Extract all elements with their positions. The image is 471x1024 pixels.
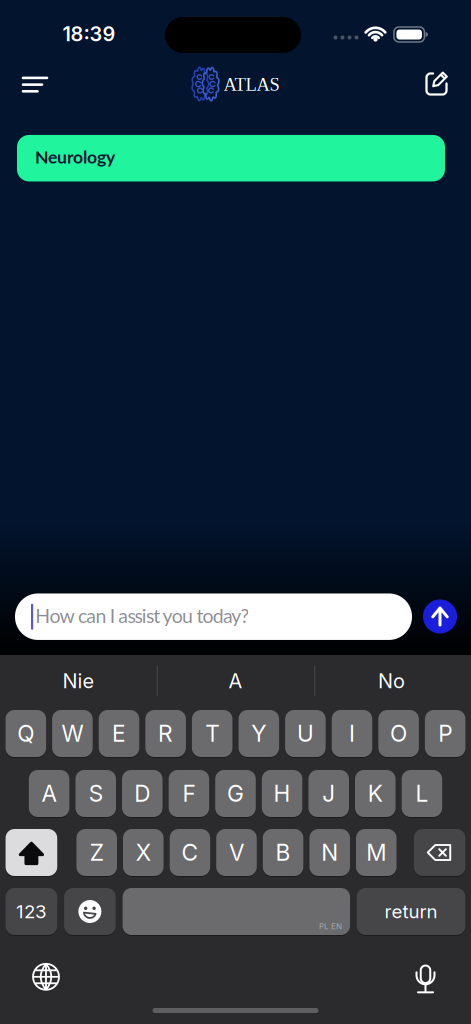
button[interactable]: T xyxy=(192,709,232,757)
staticText: D xyxy=(134,780,150,807)
staticText: Q xyxy=(17,720,34,747)
staticText: How can I assist you today? xyxy=(35,604,249,627)
button[interactable]: R xyxy=(145,709,186,757)
staticText: Nie xyxy=(62,669,94,693)
button[interactable]: U xyxy=(285,709,326,757)
button[interactable]: Send xyxy=(422,598,458,634)
staticText: PL EN xyxy=(319,922,342,931)
button[interactable]: D xyxy=(122,769,163,817)
staticText: M xyxy=(366,839,386,866)
staticText: S xyxy=(89,780,103,807)
staticText: A xyxy=(42,780,57,807)
staticText: Y xyxy=(251,720,266,747)
button[interactable]: Q xyxy=(5,709,46,757)
button[interactable]: Next keyboard xyxy=(24,955,68,999)
button[interactable]: Shift xyxy=(5,828,57,876)
staticText: U xyxy=(297,720,314,747)
button[interactable]: Neurology xyxy=(17,135,445,181)
staticText: P xyxy=(438,720,452,747)
staticText: 18:39 xyxy=(62,22,115,46)
button[interactable]: I xyxy=(332,709,372,757)
button[interactable]: P xyxy=(425,709,465,757)
staticText: I xyxy=(349,720,355,747)
button[interactable]: J xyxy=(308,769,349,817)
staticText: L xyxy=(415,780,428,807)
button[interactable]: Z xyxy=(76,828,117,876)
staticText: No xyxy=(378,669,405,693)
button[interactable]: F xyxy=(169,769,209,817)
button[interactable]: Nie xyxy=(3,656,153,706)
button[interactable]: Dictate xyxy=(403,955,447,999)
button[interactable]: New chat xyxy=(420,69,454,103)
staticText: O xyxy=(390,720,407,747)
staticText: T xyxy=(205,720,219,747)
staticText: R xyxy=(158,720,173,747)
button[interactable]: H xyxy=(262,769,302,817)
staticText: return xyxy=(384,900,437,922)
button[interactable]: Menu xyxy=(20,73,50,95)
button[interactable]: A xyxy=(29,769,69,817)
button[interactable]: Delete xyxy=(414,828,465,876)
staticText: X xyxy=(136,839,151,866)
button[interactable]: W xyxy=(52,709,93,757)
button[interactable]: A xyxy=(160,656,310,706)
staticText: H xyxy=(274,780,291,807)
staticText: V xyxy=(229,839,244,866)
button[interactable]: L xyxy=(402,769,442,817)
button[interactable]: N xyxy=(309,828,350,876)
staticText: C xyxy=(181,839,198,866)
staticText: E xyxy=(112,720,126,747)
button[interactable]: X xyxy=(123,828,164,876)
button[interactable]: C xyxy=(170,828,210,876)
staticText: A xyxy=(228,669,242,693)
button[interactable]: G xyxy=(215,769,256,817)
button[interactable]: Y xyxy=(238,709,279,757)
button[interactable]: K xyxy=(355,769,396,817)
staticText: 123 xyxy=(16,900,47,922)
staticText: Z xyxy=(90,839,104,866)
staticText: Neurology xyxy=(35,146,115,167)
button[interactable]: Emoji xyxy=(64,887,116,935)
staticText: G xyxy=(227,780,244,807)
staticText: W xyxy=(61,720,83,747)
staticText: B xyxy=(276,839,291,866)
staticText: K xyxy=(368,780,383,807)
button[interactable]: V xyxy=(216,828,257,876)
button[interactable]: O xyxy=(378,709,419,757)
button[interactable]: No xyxy=(316,656,466,706)
staticText: ATLAS xyxy=(223,74,279,95)
button[interactable]: return xyxy=(357,887,465,935)
button[interactable]: E xyxy=(99,709,139,757)
button[interactable]: 123 xyxy=(5,887,57,935)
button[interactable]: Message field xyxy=(15,593,412,640)
staticText: F xyxy=(182,780,195,807)
button[interactable]: M xyxy=(356,828,397,876)
button[interactable]: B xyxy=(263,828,303,876)
staticText: N xyxy=(321,839,338,866)
button[interactable]: S xyxy=(75,769,116,817)
button[interactable]: Space xyxy=(123,887,350,935)
staticText: J xyxy=(322,780,335,807)
